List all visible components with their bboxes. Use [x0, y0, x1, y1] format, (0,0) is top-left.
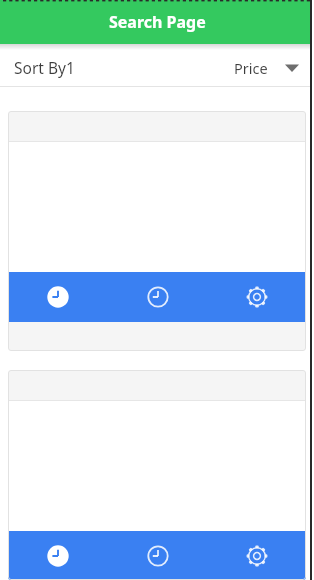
staticText: Sort By1	[14, 57, 75, 78]
button[interactable]: Price	[234, 58, 299, 78]
button[interactable]	[8, 531, 108, 580]
button[interactable]	[207, 531, 306, 580]
staticText: Price	[234, 58, 268, 78]
button[interactable]	[108, 272, 207, 322]
button[interactable]	[108, 531, 207, 580]
staticText: Search Page	[109, 11, 206, 33]
button[interactable]	[207, 272, 306, 322]
button[interactable]	[8, 111, 306, 351]
button[interactable]	[8, 370, 306, 580]
button[interactable]	[8, 272, 108, 322]
